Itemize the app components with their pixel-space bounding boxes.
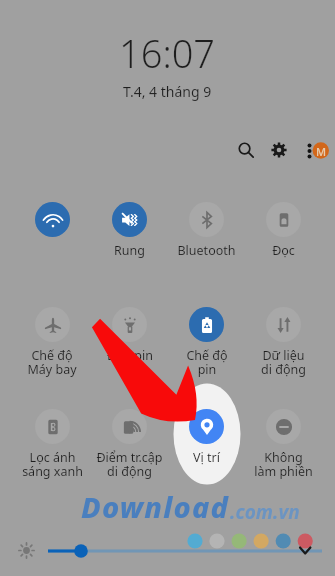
staticText: Dữ liệu di động [261, 347, 306, 378]
button[interactable]: Bluetooth [168, 202, 245, 259]
staticText: Download [81, 487, 230, 526]
staticText: 16:07 [119, 27, 216, 79]
staticText: Không làm phiền [254, 449, 313, 480]
staticText: Đèn pin [107, 347, 153, 364]
staticText: M [316, 144, 327, 159]
staticText: Điểm tr.cập di động [96, 449, 163, 480]
button[interactable]: Settings [265, 136, 293, 164]
staticText: Rung [114, 242, 145, 259]
button[interactable]: Chế độ pin [168, 307, 245, 378]
button[interactable]: Điểm tr.cập di động [91, 409, 168, 480]
staticText: Lọc ánh sáng xanh [22, 449, 83, 480]
button[interactable] [13, 202, 91, 237]
staticText: Bluetooth [177, 242, 236, 259]
staticText: .com.vn [230, 499, 300, 525]
staticText: T.4, 4 tháng 9 [123, 82, 212, 101]
button[interactable]: Không làm phiền [245, 409, 322, 480]
button[interactable]: Chế độ Máy bay [13, 307, 91, 378]
button[interactable]: Đèn pin [91, 307, 168, 364]
staticText: Vị trí [193, 449, 220, 466]
button[interactable]: Vị trí [168, 409, 245, 466]
button[interactable]: Rung [91, 202, 168, 259]
button[interactable]: Lọc ánh sáng xanh [13, 409, 91, 480]
button[interactable]: Search [232, 136, 260, 164]
button[interactable]: Account menu [303, 136, 333, 166]
staticText: Đọc [272, 242, 295, 259]
button[interactable]: Dữ liệu di động [245, 307, 322, 378]
button[interactable]: Đọc [245, 202, 322, 259]
staticText: Chế độ Máy bay [27, 347, 77, 378]
staticText: Chế độ pin [186, 347, 228, 378]
